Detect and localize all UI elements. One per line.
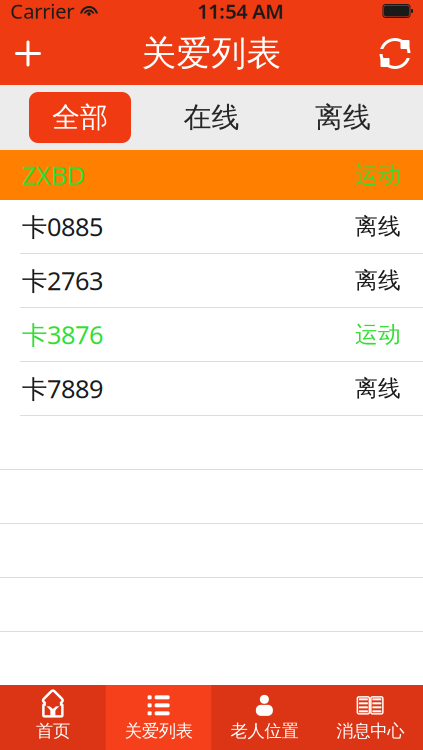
staticText: 离线 [355,267,401,294]
button[interactable]: Refresh [367,24,423,82]
button[interactable]: 在线 [160,92,262,143]
button[interactable]: 老人位置 [211,685,317,750]
button[interactable]: 首页 [0,685,106,750]
staticText: 离线 [355,375,401,402]
staticText: ZXBD [22,158,85,192]
staticText: 在线 [183,100,239,135]
staticText: 首页 [36,720,70,742]
button[interactable]: ZXBD [0,150,423,200]
staticText: 运动 [355,321,401,348]
staticText: 卡0885 [22,210,103,243]
button[interactable]: Add [0,24,56,82]
button[interactable]: 卡2763 [0,254,423,307]
staticText: 离线 [315,100,371,135]
staticText: Carrier [10,0,74,24]
button[interactable]: 卡7889 [0,362,423,415]
button[interactable]: 全部 [29,92,131,143]
button[interactable]: 关爱列表 [106,685,212,750]
staticText: 老人位置 [230,720,298,742]
staticText: 卡3876 [22,318,103,351]
staticText: 消息中心 [336,720,404,742]
staticText: 卡2763 [22,264,103,297]
staticText: 卡7889 [22,372,103,405]
button[interactable]: 卡0885 [0,200,423,253]
staticText: 关爱列表 [141,32,281,75]
button[interactable]: 卡3876 [0,308,423,361]
staticText: 全部 [52,100,108,135]
button[interactable]: 消息中心 [317,685,423,750]
button[interactable]: 离线 [292,92,398,143]
staticText: 关爱列表 [125,720,193,742]
staticText: 离线 [355,213,401,240]
staticText: 运动 [355,161,401,189]
staticText: 11:54 AM [197,0,284,24]
